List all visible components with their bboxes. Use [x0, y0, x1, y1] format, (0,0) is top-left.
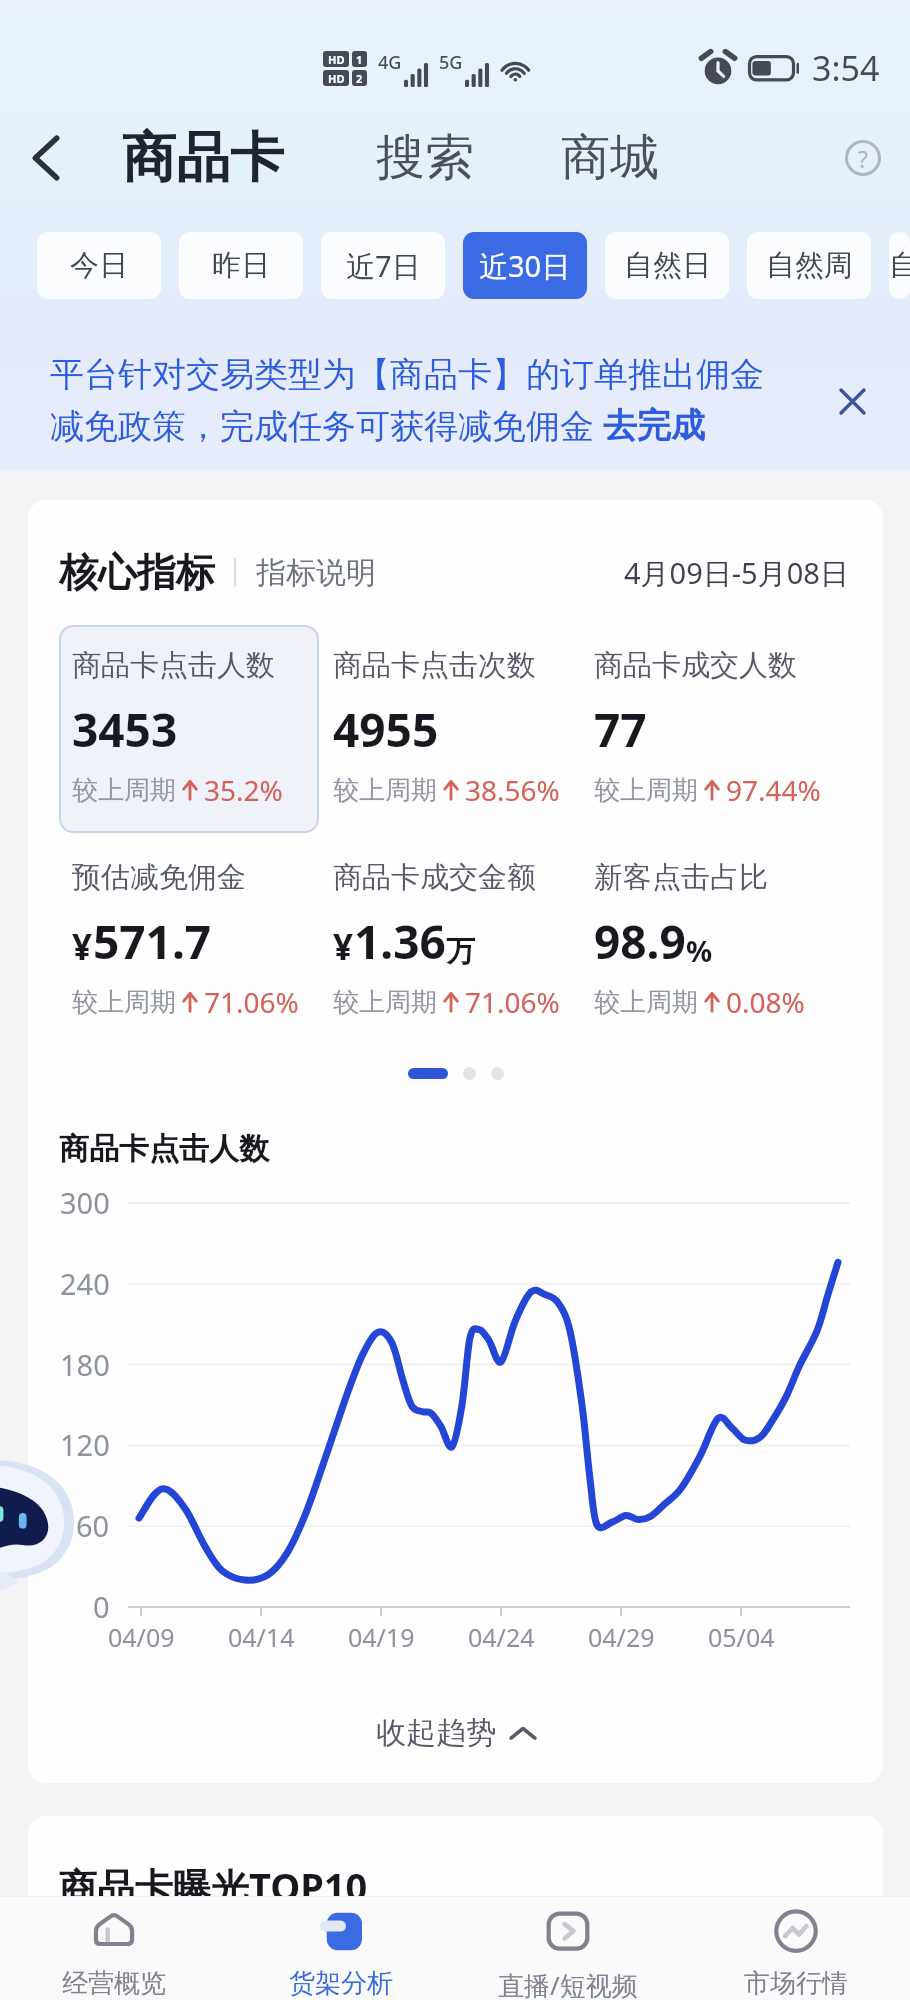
button[interactable]: 商品卡点击次数 — [333, 647, 594, 809]
staticText: 预估减免佣金 — [72, 859, 246, 896]
button[interactable]: 自然周 — [747, 232, 871, 299]
staticText: 0.08% — [726, 983, 805, 1021]
staticText: 核心指标 — [59, 548, 215, 597]
staticText: 35.2% — [204, 771, 283, 809]
staticText: 新客点击占比 — [594, 859, 768, 896]
staticText: 04/24 — [468, 1620, 535, 1654]
button[interactable]: 直播/短视频 — [454, 1897, 682, 2000]
staticText: 240 — [60, 1264, 110, 1303]
staticText: 05/04 — [708, 1620, 775, 1654]
staticText: 38.56% — [465, 771, 560, 809]
button[interactable]: Close banner — [826, 375, 878, 427]
button[interactable]: 商品卡 — [122, 124, 284, 192]
staticText: 较上周期 — [594, 774, 698, 807]
button[interactable]: 指标说明 — [256, 554, 376, 592]
staticText: ? — [858, 143, 868, 174]
staticText: 571.7 — [93, 910, 212, 973]
button[interactable]: 昨日 — [179, 232, 303, 299]
button[interactable]: 搜索 — [376, 127, 474, 189]
staticText: HD — [328, 52, 345, 67]
button[interactable]: 商品卡成交金额 — [333, 859, 594, 1021]
staticText: 4G — [378, 50, 402, 75]
staticText: 自然日 — [624, 247, 711, 284]
staticText: 2 — [356, 71, 363, 86]
staticText: 减免政策，完成任务可获得减免佣金 — [50, 402, 603, 448]
button[interactable]: 预估减免佣金 — [72, 859, 333, 1021]
button[interactable]: 市场行情 — [682, 1897, 910, 2000]
staticText: 货架分析 — [289, 1967, 393, 2000]
staticText: 97.44% — [726, 771, 821, 809]
staticText: 今日 — [70, 247, 128, 284]
staticText: 1.36 — [354, 910, 446, 973]
staticText: % — [686, 931, 713, 970]
staticText: 商品卡成交金额 — [333, 859, 536, 896]
staticText: 较上周期 — [72, 986, 176, 1019]
button[interactable]: 自然日 — [605, 232, 729, 299]
staticText: 1 — [356, 52, 363, 67]
staticText: 300 — [60, 1183, 110, 1222]
staticText: 98.9 — [594, 910, 686, 973]
staticText: 71.06% — [465, 983, 560, 1021]
button[interactable]: 近7日 — [321, 232, 445, 299]
button[interactable]: 去完成 — [603, 404, 705, 447]
staticText: 近7日 — [346, 246, 421, 286]
staticText: 商品卡曝光TOP10 — [59, 1860, 368, 1912]
staticText: 市场行情 — [744, 1967, 848, 2000]
staticText: 平台针对交易类型为【商品卡】的订单推出佣金 — [50, 353, 764, 396]
staticText: 4月09日-5月08日 — [624, 553, 849, 593]
button[interactable]: 商品卡成交人数 — [594, 647, 855, 809]
staticText: ¥ — [333, 923, 354, 971]
staticText: 60 — [76, 1506, 110, 1545]
staticText: 自然周 — [766, 247, 853, 284]
staticText: 收起趋势 — [376, 1714, 496, 1752]
button[interactable]: 今日 — [37, 232, 161, 299]
staticText: 直播/短视频 — [498, 1967, 638, 2000]
staticText: 04/14 — [228, 1620, 295, 1654]
staticText: 3:54 — [812, 45, 880, 91]
staticText: 04/09 — [108, 1620, 175, 1654]
staticText: 近30日 — [479, 246, 571, 286]
button[interactable]: 近30日 — [463, 232, 587, 299]
staticText: 较上周期 — [594, 986, 698, 1019]
button[interactable]: Back — [22, 134, 70, 182]
staticText: 77 — [594, 698, 647, 761]
button[interactable]: 收起趋势 — [28, 1710, 883, 1756]
staticText: 04/29 — [588, 1620, 655, 1654]
staticText: 自 — [889, 247, 910, 284]
staticText: 较上周期 — [72, 774, 176, 807]
staticText: 120 — [60, 1425, 110, 1464]
staticText: 较上周期 — [333, 986, 437, 1019]
staticText: 180 — [60, 1345, 110, 1384]
button[interactable]: 新客点击占比 — [594, 859, 855, 1021]
button[interactable]: 经营概览 — [0, 1897, 227, 2000]
staticText: 较上周期 — [333, 774, 437, 807]
staticText: 3453 — [72, 698, 178, 761]
staticText: 昨日 — [212, 247, 270, 284]
button[interactable]: 商城 — [561, 127, 659, 189]
button[interactable]: Help — [841, 136, 885, 180]
staticText: 5G — [439, 50, 463, 75]
staticText: 万 — [446, 933, 475, 970]
staticText: HD — [328, 71, 345, 86]
staticText: 4955 — [333, 698, 439, 761]
button[interactable]: 商品卡点击人数 — [72, 647, 333, 809]
staticText: 商品卡点击人数 — [72, 647, 275, 684]
staticText: ¥ — [72, 923, 93, 971]
staticText: 商品卡成交人数 — [594, 647, 797, 684]
staticText: 71.06% — [204, 983, 299, 1021]
button[interactable]: 自 — [889, 232, 910, 299]
staticText: 商品卡点击人数 — [59, 1130, 269, 1168]
staticText: 商品卡点击次数 — [333, 647, 536, 684]
staticText: 经营概览 — [62, 1967, 166, 2000]
staticText: 0 — [93, 1587, 110, 1626]
staticText: 04/19 — [348, 1620, 415, 1654]
button[interactable]: 货架分析 — [227, 1897, 454, 2000]
